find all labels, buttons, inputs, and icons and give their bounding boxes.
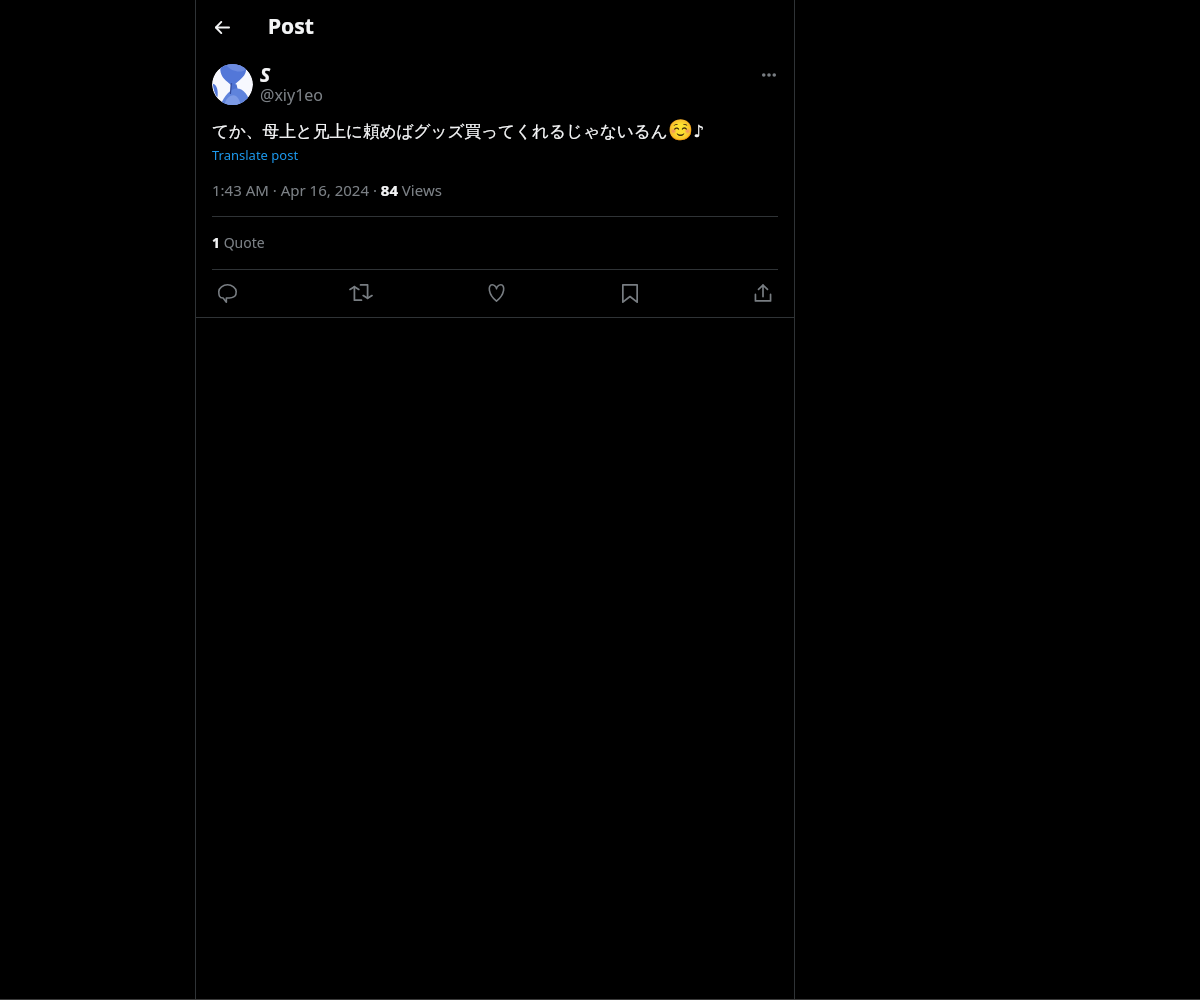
staticText: Post xyxy=(268,12,314,41)
staticText: S xyxy=(260,62,271,88)
button[interactable]: Profile picture xyxy=(212,64,253,105)
button[interactable]: Bookmark xyxy=(610,273,650,313)
staticText: てか、母上と兄上に頼めばグッズ買ってくれるじゃないるん☺️♪ xyxy=(212,118,782,142)
button[interactable]: More options xyxy=(750,56,788,94)
button[interactable]: Reply xyxy=(207,273,247,313)
button[interactable]: Back xyxy=(202,7,242,47)
staticText: @xiy1eo xyxy=(260,84,323,106)
staticText: 1 Quote xyxy=(212,233,265,252)
button[interactable]: Share xyxy=(743,273,783,313)
staticText: 1:43 AM · Apr 16, 2024 · 84 Views xyxy=(212,180,442,200)
button[interactable]: Translate post xyxy=(212,146,299,164)
button[interactable]: 1 Quote xyxy=(196,216,794,268)
staticText: Translate post xyxy=(212,146,299,164)
button[interactable]: Repost xyxy=(341,272,381,312)
button[interactable]: Like xyxy=(476,273,516,313)
